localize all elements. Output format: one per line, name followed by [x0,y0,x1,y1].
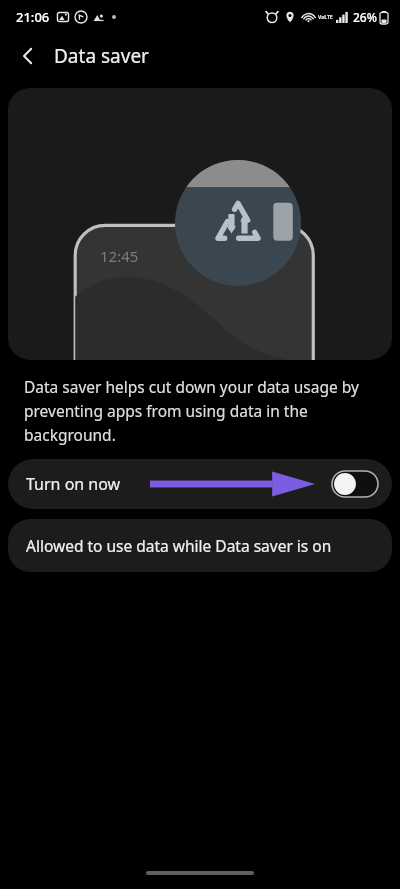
staticText: Data saver helps cut down your data usag… [24,376,376,445]
staticText: Data saver [54,43,149,69]
staticText: Allowed to use data while Data saver is … [26,535,332,556]
staticText: VoLTE [318,14,333,21]
staticText: 26% [353,9,377,25]
button[interactable]: Turn on now [8,459,392,509]
button[interactable]: Back [6,34,50,78]
staticText: 21:06 [16,8,50,26]
staticText: Turn on now [26,473,121,495]
button[interactable]: Turn on Data saver [332,471,378,497]
button[interactable]: Allowed to use data while Data saver is … [8,519,392,572]
staticText: 12:45 [100,246,139,266]
